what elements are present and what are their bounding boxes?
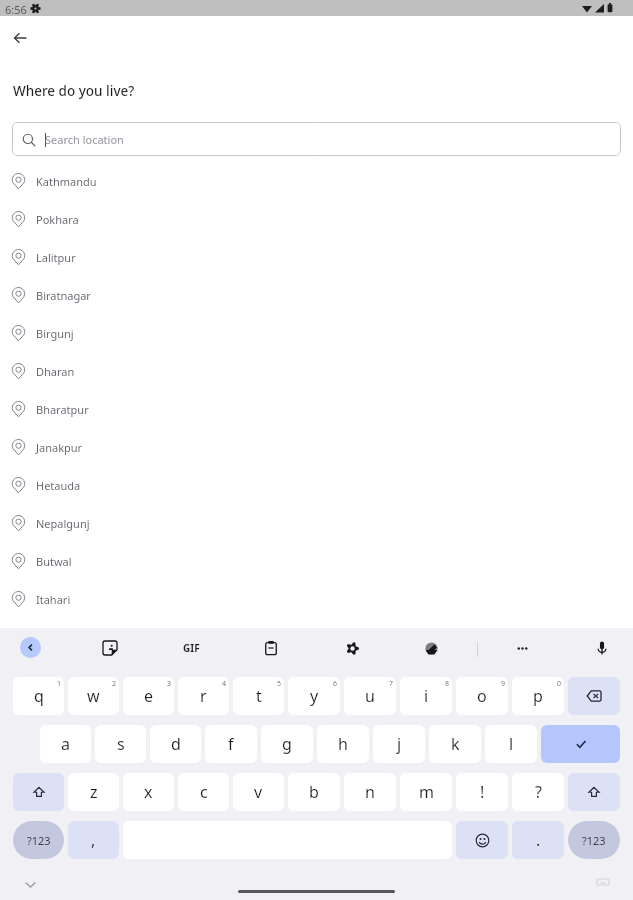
button[interactable]: ?123 [13, 821, 64, 859]
button[interactable]: ?123 [568, 821, 620, 859]
button[interactable]: n [344, 773, 396, 811]
button[interactable]: Search location [12, 122, 621, 156]
staticText: 6 [333, 679, 338, 689]
button[interactable]: h [317, 725, 369, 763]
button[interactable]: . [512, 821, 564, 859]
staticText: , [91, 829, 96, 851]
button[interactable]: Themes [416, 633, 446, 663]
button[interactable]: Emoji [456, 821, 508, 859]
staticText: v [254, 781, 263, 803]
button[interactable]: Shift [568, 773, 620, 811]
button[interactable]: Backspace [568, 677, 620, 715]
button[interactable]: Hetauda [0, 466, 633, 504]
button[interactable]: i [400, 677, 452, 715]
button[interactable]: Janakpur [0, 428, 633, 466]
button[interactable]: f [205, 725, 257, 763]
button[interactable]: More options [507, 633, 537, 663]
button[interactable]: g [261, 725, 313, 763]
staticText: 8 [445, 679, 450, 689]
staticText: ! [480, 781, 485, 803]
button[interactable]: a [40, 725, 91, 763]
button[interactable]: Lalitpur [0, 238, 633, 276]
button[interactable]: v [233, 773, 284, 811]
button[interactable]: , [68, 821, 119, 859]
button[interactable]: ? [512, 773, 564, 811]
button[interactable]: Voice input [587, 633, 617, 663]
staticText: ?123 [27, 833, 51, 848]
staticText: Butwal [36, 554, 72, 569]
staticText: 6:56 [5, 2, 27, 17]
button[interactable]: Previous [20, 637, 41, 658]
button[interactable]: x [123, 773, 174, 811]
staticText: Janakpur [36, 440, 83, 455]
button[interactable]: Butwal [0, 542, 633, 580]
button[interactable]: b [288, 773, 340, 811]
button[interactable]: j [373, 725, 425, 763]
button[interactable]: s [95, 725, 146, 763]
staticText: 3 [167, 679, 172, 689]
staticText: GIF [183, 641, 200, 655]
button[interactable]: y [288, 677, 340, 715]
button[interactable]: Biratnagar [0, 276, 633, 314]
button[interactable]: r [178, 677, 229, 715]
staticText: x [144, 781, 153, 803]
button[interactable]: c [178, 773, 229, 811]
button[interactable]: p [512, 677, 564, 715]
staticText: g [282, 733, 292, 755]
button[interactable]: e [123, 677, 174, 715]
staticText: z [90, 781, 98, 803]
button[interactable]: Clipboard [256, 633, 286, 663]
staticText: 4 [222, 679, 227, 689]
button[interactable]: Kathmandu [0, 162, 633, 200]
button[interactable]: Bharatpur [0, 390, 633, 428]
staticText: f [228, 733, 234, 755]
button[interactable]: GIF [176, 639, 206, 657]
staticText: h [338, 733, 348, 755]
button[interactable]: w [68, 677, 119, 715]
button[interactable]: q [13, 677, 64, 715]
staticText: m [419, 781, 434, 803]
button[interactable]: Itahari [0, 580, 633, 618]
button[interactable]: Settings [337, 633, 367, 663]
button[interactable]: l [485, 725, 537, 763]
staticText: 5 [277, 679, 282, 689]
staticText: Kathmandu [36, 174, 97, 189]
button[interactable]: z [68, 773, 119, 811]
button[interactable]: Switch keyboard [593, 873, 613, 893]
staticText: ? [535, 781, 542, 803]
button[interactable]: Dharan [0, 352, 633, 390]
staticText: Nepalgunj [36, 516, 90, 531]
staticText: Lalitpur [36, 250, 76, 265]
staticText: u [365, 685, 375, 707]
staticText: n [365, 781, 375, 803]
button[interactable]: u [344, 677, 396, 715]
staticText: ?123 [582, 833, 606, 848]
button[interactable]: Birgunj [0, 314, 633, 352]
button[interactable]: Pokhara [0, 200, 633, 238]
button[interactable]: Shift [13, 773, 64, 811]
staticText: 7 [389, 679, 394, 689]
button[interactable]: ! [456, 773, 508, 811]
staticText: . [536, 829, 541, 851]
staticText: d [171, 733, 181, 755]
button[interactable]: Nepalgunj [0, 504, 633, 542]
staticText: 1 [57, 679, 62, 689]
button[interactable]: Sticker [95, 633, 125, 663]
button[interactable]: t [233, 677, 284, 715]
button[interactable]: k [429, 725, 481, 763]
staticText: t [256, 685, 262, 707]
staticText: c [200, 781, 208, 803]
staticText: Pokhara [36, 212, 79, 227]
button[interactable]: Hide keyboard [20, 874, 40, 894]
staticText: Bharatpur [36, 402, 89, 417]
staticText: q [34, 685, 44, 707]
staticText: Dharan [36, 364, 75, 379]
button[interactable]: Back [6, 24, 34, 52]
staticText: y [310, 685, 319, 707]
button[interactable]: o [456, 677, 508, 715]
staticText: l [509, 733, 514, 755]
button[interactable]: d [150, 725, 201, 763]
button[interactable]: Enter [541, 725, 620, 763]
button[interactable]: m [400, 773, 452, 811]
